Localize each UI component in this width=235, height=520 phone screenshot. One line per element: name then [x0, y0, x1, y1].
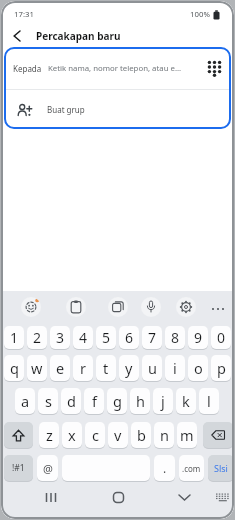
- staticText: 3: [56, 328, 65, 347]
- staticText: .: [163, 460, 167, 476]
- staticText: Ketik nama, nomor telepon, atau e...: [48, 63, 203, 74]
- staticText: @: [43, 461, 53, 476]
- staticText: 7: [148, 328, 157, 347]
- staticText: p: [217, 358, 226, 378]
- staticText: 4: [79, 328, 88, 347]
- staticText: h: [136, 391, 145, 411]
- staticText: 0: [217, 328, 226, 347]
- staticText: 9: [194, 328, 203, 347]
- staticText: z: [46, 425, 53, 445]
- staticText: Slsi: [214, 462, 228, 474]
- staticText: f: [92, 391, 97, 411]
- staticText: 100%: [190, 9, 210, 20]
- staticText: !#1: [12, 462, 25, 474]
- staticText: n: [160, 425, 169, 445]
- staticText: m: [180, 425, 194, 445]
- staticText: 6: [125, 328, 134, 347]
- staticText: i: [173, 358, 177, 378]
- staticText: 8: [171, 328, 180, 347]
- staticText: r: [80, 358, 86, 378]
- staticText: d: [67, 391, 76, 411]
- staticText: g: [113, 391, 122, 411]
- staticText: Buat grup: [47, 104, 85, 115]
- staticText: x: [68, 425, 76, 445]
- staticText: j: [161, 391, 165, 411]
- staticText: e: [56, 358, 65, 378]
- staticText: 5: [102, 328, 111, 347]
- staticText: v: [114, 425, 122, 445]
- staticText: 1: [10, 328, 19, 347]
- staticText: Percakapan baru: [36, 29, 121, 43]
- staticText: s: [45, 391, 52, 411]
- staticText: .com: [182, 463, 201, 474]
- staticText: o: [194, 358, 203, 378]
- staticText: Kepada: [13, 63, 42, 74]
- staticText: k: [182, 391, 190, 411]
- staticText: q: [10, 358, 19, 378]
- staticText: c: [92, 425, 99, 445]
- staticText: t: [103, 358, 109, 378]
- staticText: a: [21, 391, 30, 411]
- staticText: u: [148, 358, 157, 378]
- staticText: w: [31, 358, 43, 378]
- staticText: 17:31: [14, 9, 34, 20]
- staticText: l: [207, 391, 211, 411]
- staticText: 2: [33, 328, 42, 347]
- staticText: b: [137, 425, 146, 445]
- staticText: y: [125, 358, 133, 378]
